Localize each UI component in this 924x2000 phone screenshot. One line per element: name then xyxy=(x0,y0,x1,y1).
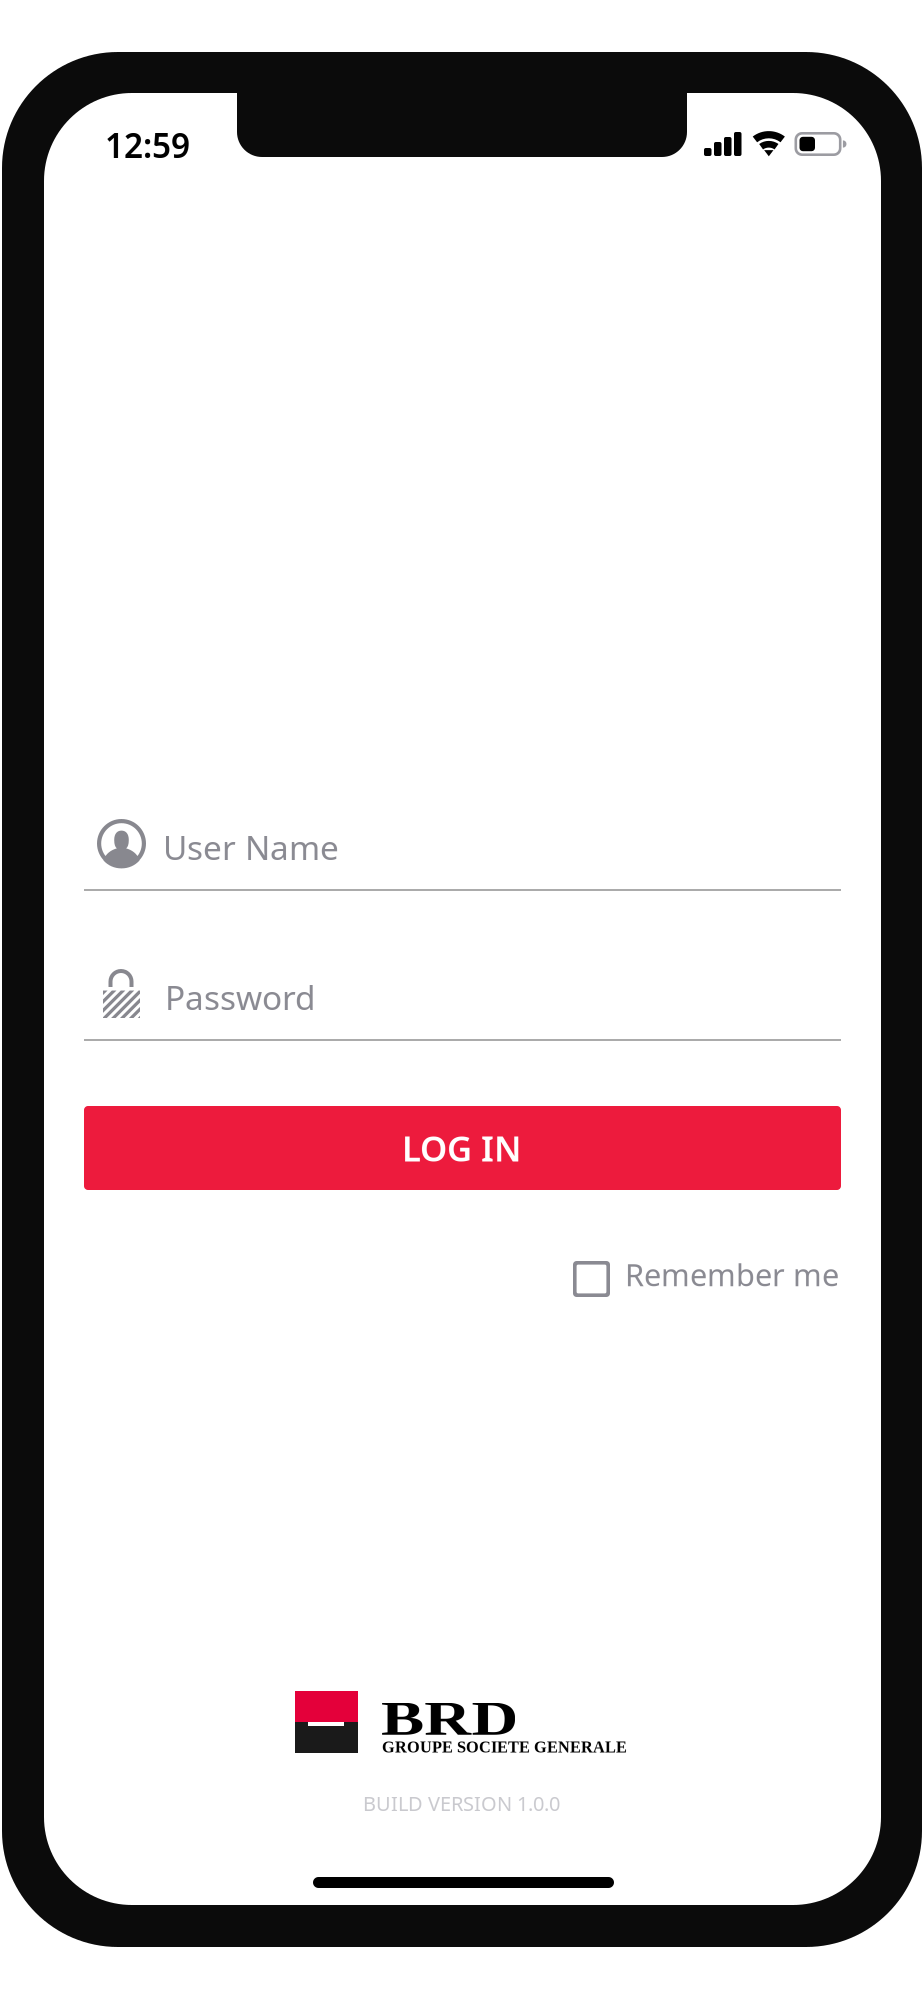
staticText: Remember me xyxy=(625,1254,839,1295)
staticText: BUILD VERSION 1.0.0 xyxy=(363,1790,560,1817)
button[interactable]: Password xyxy=(84,937,841,1041)
staticText: User Name xyxy=(163,825,339,869)
button[interactable]: Remember me xyxy=(561,1241,853,1317)
staticText: GROUPE SOCIETE GENERALE xyxy=(382,1738,627,1756)
button[interactable]: LOG IN xyxy=(84,1106,841,1190)
button[interactable]: User Name xyxy=(84,787,841,891)
staticText: 12:59 xyxy=(105,123,190,167)
staticText: BRD xyxy=(381,1692,483,1745)
staticText: LOG IN xyxy=(402,1125,521,1171)
staticText: Password xyxy=(165,975,316,1019)
